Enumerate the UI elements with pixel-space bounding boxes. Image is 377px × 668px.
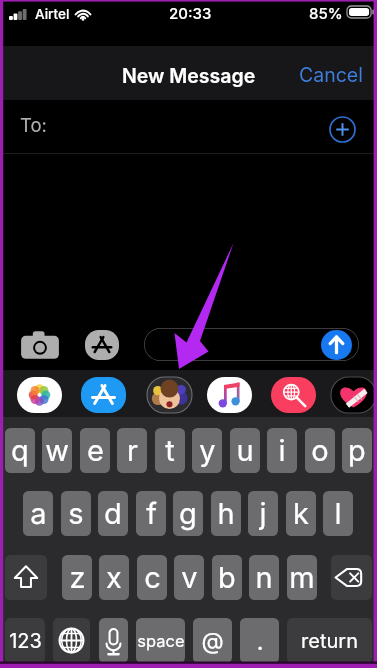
button[interactable]: c	[137, 555, 167, 600]
button[interactable]: space	[136, 618, 185, 663]
staticText: v	[181, 560, 198, 595]
staticText: 85%	[309, 4, 343, 22]
staticText: e	[87, 433, 104, 468]
button[interactable]: Backspace	[331, 555, 372, 600]
button[interactable]: Cancel	[285, 55, 377, 95]
button[interactable]: @	[193, 618, 232, 663]
button[interactable]: i	[267, 428, 297, 473]
button[interactable]: Photos	[17, 377, 62, 413]
staticText: g	[179, 496, 197, 531]
staticText: p	[348, 433, 366, 468]
button[interactable]: p	[342, 428, 372, 473]
staticText: .	[256, 626, 264, 656]
button[interactable]: k	[286, 491, 316, 536]
button[interactable]: w	[42, 428, 72, 473]
button[interactable]: Shift	[5, 555, 47, 600]
button[interactable]: f	[136, 491, 166, 536]
staticText: t	[165, 433, 175, 468]
button[interactable]: v	[174, 555, 204, 600]
button[interactable]: j	[248, 491, 278, 536]
button[interactable]: Change keyboard	[53, 618, 90, 663]
staticText: s	[68, 496, 84, 531]
button[interactable]: 123	[5, 618, 45, 663]
staticText: r	[127, 433, 138, 468]
button[interactable]: g	[173, 491, 203, 536]
staticText: Cancel	[299, 63, 363, 87]
staticText: return	[301, 629, 358, 653]
button[interactable]: d	[98, 491, 128, 536]
button[interactable]: .	[240, 618, 279, 663]
staticText: d	[104, 496, 122, 531]
staticText: f	[146, 496, 157, 531]
button[interactable]: l	[323, 491, 353, 536]
button[interactable]: m	[287, 555, 317, 600]
staticText: 123	[9, 629, 42, 653]
button[interactable]: y	[192, 428, 222, 473]
staticText: m	[289, 560, 315, 595]
staticText: u	[236, 433, 254, 468]
staticText: a	[30, 496, 47, 531]
staticText: n	[255, 560, 273, 595]
button[interactable]: e	[80, 428, 110, 473]
button[interactable]: z	[62, 555, 92, 600]
button[interactable]: Memoji	[147, 377, 192, 413]
staticText: w	[45, 433, 69, 468]
staticText: 20:33	[169, 4, 212, 22]
button[interactable]: Send	[321, 330, 352, 360]
button[interactable]: b	[212, 555, 242, 600]
button[interactable]: Digital Touch	[331, 377, 376, 413]
staticText: j	[259, 496, 267, 531]
button[interactable]: Dictate	[99, 618, 128, 663]
staticText: i	[278, 433, 286, 468]
button[interactable]: App Store	[85, 330, 119, 360]
button[interactable]: Image search	[271, 377, 316, 413]
button[interactable]: h	[211, 491, 241, 536]
staticText: x	[106, 560, 122, 595]
staticText: Airtel	[35, 6, 70, 22]
staticText: New Message	[122, 64, 256, 88]
staticText: h	[217, 496, 235, 531]
button[interactable]: Add contact	[329, 116, 356, 143]
button[interactable]: Camera	[19, 329, 61, 361]
staticText: k	[293, 496, 309, 531]
staticText: q	[11, 433, 29, 468]
staticText: @	[201, 627, 224, 655]
staticText: space	[137, 631, 185, 651]
button[interactable]: Music	[207, 377, 252, 413]
button[interactable]: x	[99, 555, 129, 600]
button[interactable]: q	[5, 428, 35, 473]
button[interactable]	[144, 328, 359, 361]
staticText: To:	[20, 114, 47, 136]
button[interactable]: o	[305, 428, 335, 473]
button[interactable]: t	[155, 428, 185, 473]
button[interactable]: r	[117, 428, 147, 473]
button[interactable]: a	[23, 491, 53, 536]
staticText: c	[144, 560, 161, 595]
button[interactable]: s	[61, 491, 91, 536]
button[interactable]: n	[249, 555, 279, 600]
staticText: l	[334, 496, 342, 531]
staticText: y	[199, 433, 216, 468]
button[interactable]: u	[230, 428, 260, 473]
staticText: o	[311, 433, 329, 468]
button[interactable]: App Store	[81, 377, 126, 413]
staticText: b	[218, 560, 236, 595]
button[interactable]: return	[287, 618, 372, 663]
staticText: z	[69, 560, 86, 595]
